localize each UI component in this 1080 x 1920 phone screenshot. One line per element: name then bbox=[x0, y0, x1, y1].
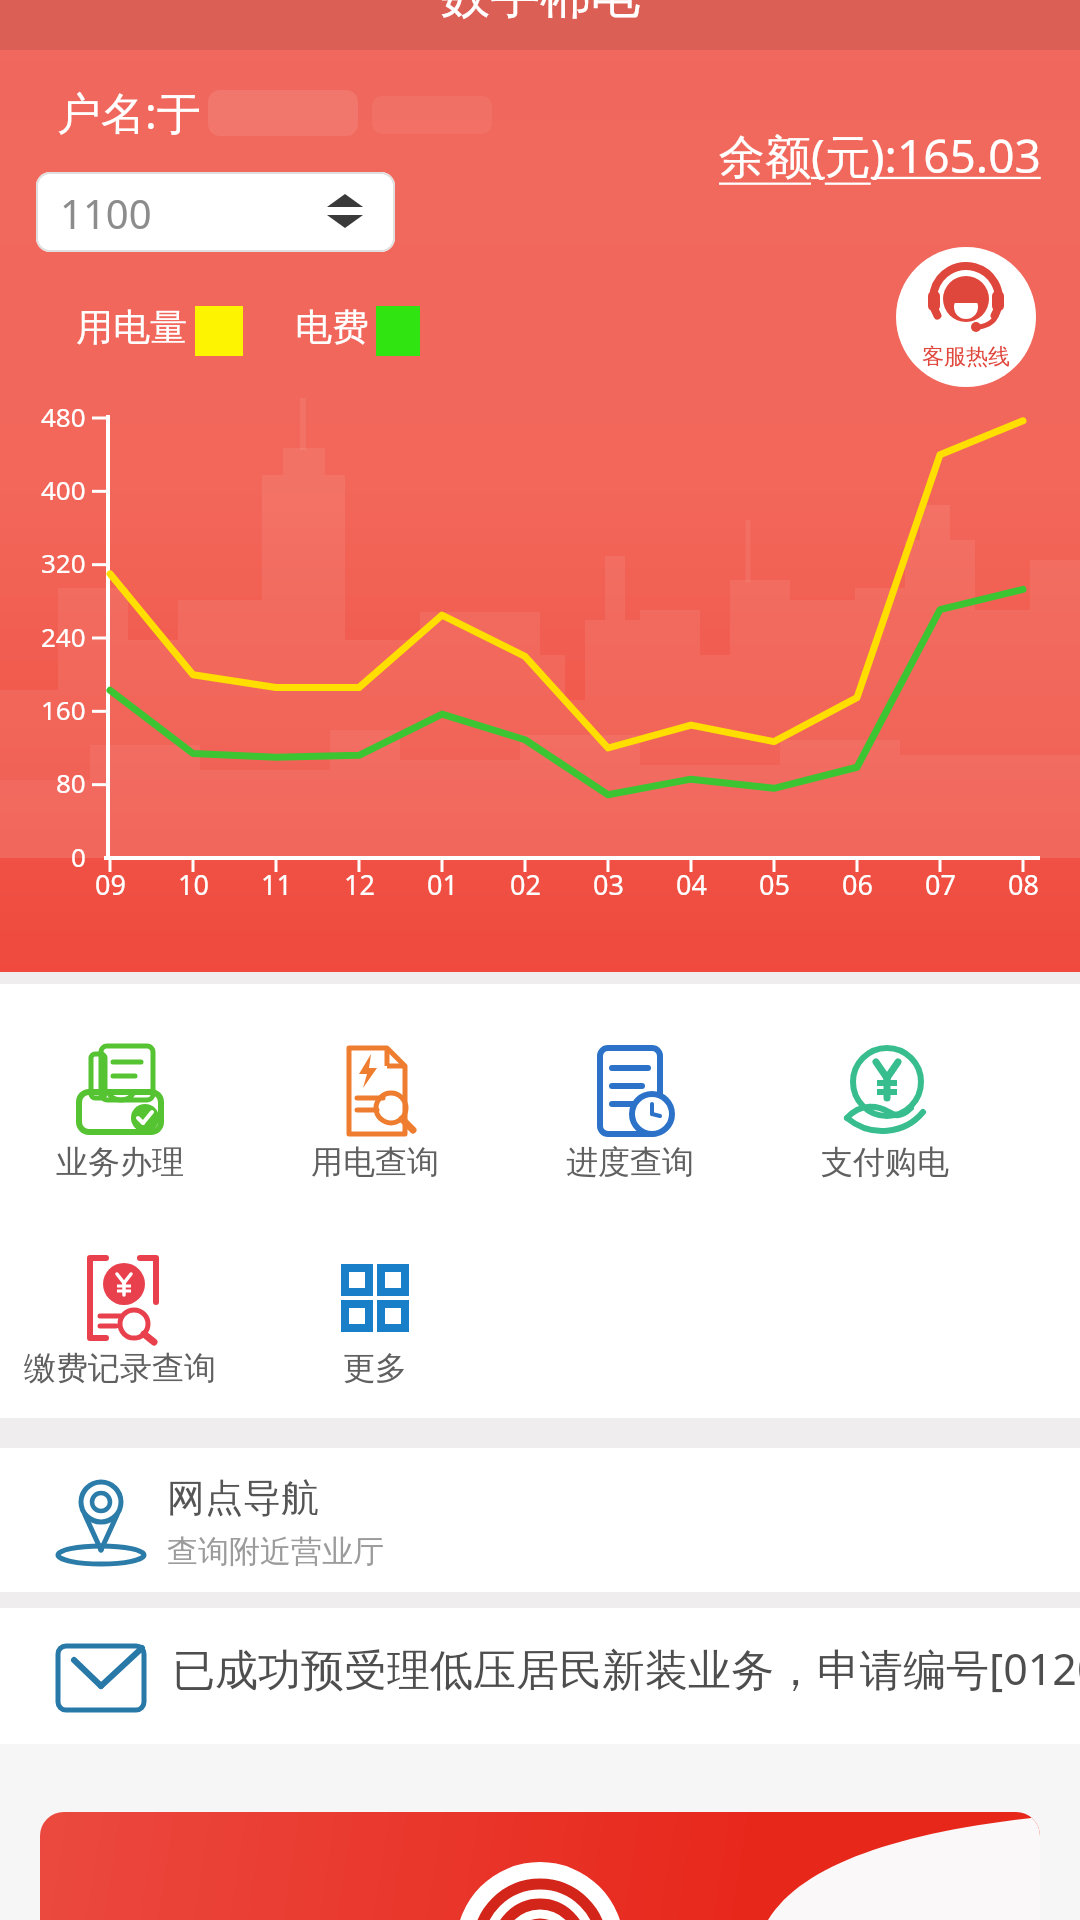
staticText: 支付购电 bbox=[821, 1142, 949, 1182]
staticText: 更多 bbox=[343, 1348, 407, 1388]
staticText: 用电查询 bbox=[311, 1142, 439, 1182]
staticText: 08 bbox=[1008, 866, 1039, 903]
staticText: 02 bbox=[510, 866, 541, 903]
staticText: 03 bbox=[593, 866, 624, 903]
staticText: 04 bbox=[676, 866, 707, 903]
staticText: 查询附近营业厅 bbox=[167, 1532, 384, 1571]
staticText: 05 bbox=[759, 866, 790, 903]
staticText: 进度查询 bbox=[566, 1142, 694, 1182]
staticText: 11 bbox=[261, 866, 292, 903]
staticText: 01 bbox=[427, 866, 458, 903]
button[interactable]: 缴费记录查询 bbox=[0, 1252, 240, 1417]
staticText: 320 bbox=[41, 545, 86, 580]
button[interactable]: 客服热线 bbox=[896, 247, 1036, 387]
staticText: 480 bbox=[41, 399, 86, 434]
staticText: 业务办理 bbox=[56, 1142, 184, 1182]
staticText: 160 bbox=[41, 692, 86, 727]
staticText: 缴费记录查询 bbox=[24, 1348, 216, 1388]
staticText: 06 bbox=[842, 866, 873, 903]
button[interactable]: 网点导航 bbox=[0, 1448, 1080, 1592]
button[interactable]: 支付购电 bbox=[765, 1042, 1005, 1207]
staticText: 12 bbox=[344, 866, 375, 903]
staticText: 数字郴电 bbox=[440, 0, 640, 27]
staticText: 户名:于 bbox=[57, 82, 201, 142]
staticText: 用电量 bbox=[76, 304, 187, 351]
staticText: 80 bbox=[56, 765, 86, 800]
button[interactable]: 业务办理 bbox=[0, 1042, 240, 1207]
button[interactable]: 已成功预受理低压居民新装业务，申请编号[01200 bbox=[0, 1608, 1080, 1744]
staticText: 客服热线 bbox=[922, 343, 1010, 371]
staticText: 07 bbox=[925, 866, 956, 903]
staticText: 余额(元):165.03 bbox=[719, 124, 1041, 187]
staticText: 网点导航 bbox=[167, 1474, 319, 1522]
button[interactable]: 1100 bbox=[36, 172, 395, 252]
button[interactable]: 进度查询 bbox=[510, 1042, 750, 1207]
button[interactable] bbox=[40, 1812, 1040, 1920]
staticText: 240 bbox=[41, 619, 86, 654]
button[interactable]: 更多 bbox=[255, 1252, 495, 1417]
staticText: 10 bbox=[178, 866, 209, 903]
button[interactable]: 用电查询 bbox=[255, 1042, 495, 1207]
staticText: 09 bbox=[95, 866, 126, 903]
staticText: 0 bbox=[71, 839, 86, 874]
staticText: 1100 bbox=[60, 186, 152, 240]
staticText: 已成功预受理低压居民新装业务，申请编号[01200 bbox=[172, 1639, 1080, 1698]
staticText: 400 bbox=[41, 472, 86, 507]
staticText: 电费 bbox=[295, 304, 369, 351]
